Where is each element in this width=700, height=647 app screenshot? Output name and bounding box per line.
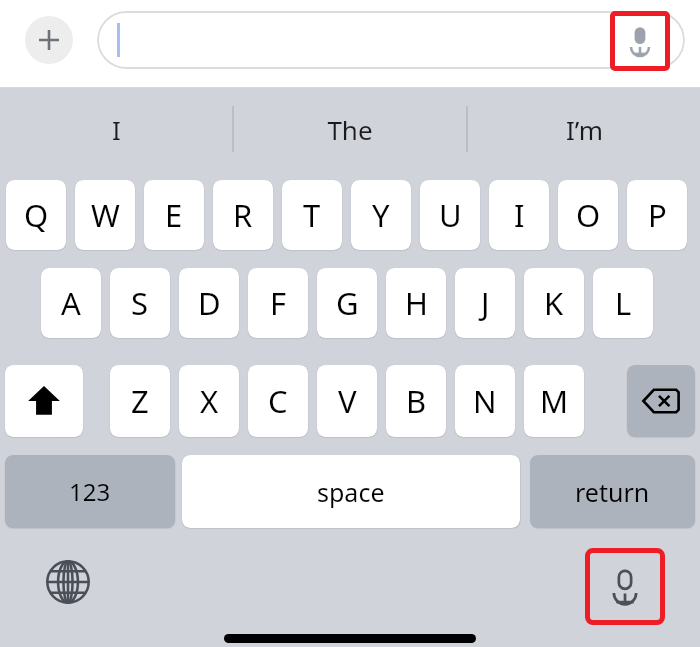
staticText: The [327, 112, 373, 147]
button[interactable]: M [524, 365, 584, 437]
staticText: A [61, 282, 81, 324]
staticText: N [473, 380, 497, 422]
staticText: F [270, 282, 287, 324]
button[interactable]: S [110, 268, 170, 338]
button[interactable]: return [530, 455, 695, 528]
staticText: W [91, 194, 120, 236]
staticText: L [615, 282, 632, 324]
staticText: J [481, 282, 490, 324]
button[interactable]: L [593, 268, 653, 338]
button[interactable]: Y [351, 180, 411, 250]
staticText: U [439, 194, 462, 236]
button[interactable]: Shift [5, 365, 83, 437]
button[interactable]: P [627, 180, 687, 250]
button[interactable]: The [234, 88, 466, 170]
staticText: I [514, 194, 525, 236]
staticText: T [303, 194, 321, 236]
staticText: return [575, 475, 650, 509]
button[interactable]: O [558, 180, 618, 250]
button[interactable]: X [179, 365, 239, 437]
button[interactable]: I [489, 180, 549, 250]
button[interactable]: G [317, 268, 377, 338]
staticText: E [165, 194, 183, 236]
staticText: Y [372, 194, 390, 236]
button[interactable]: Z [110, 365, 170, 437]
button[interactable]: J [455, 268, 515, 338]
button[interactable]: I’m [468, 88, 700, 170]
button[interactable]: Switch keyboard language [40, 554, 96, 610]
button[interactable] [97, 11, 685, 69]
button[interactable]: Add [25, 16, 73, 64]
staticText: G [336, 282, 359, 324]
staticText: O [576, 194, 601, 236]
staticText: R [233, 194, 253, 236]
button[interactable]: D [179, 268, 239, 338]
staticText: X [200, 380, 219, 422]
button[interactable]: N [455, 365, 515, 437]
staticText: S [131, 282, 149, 324]
staticText: B [406, 380, 427, 422]
button[interactable]: H [386, 268, 446, 338]
staticText: 123 [69, 475, 111, 508]
button[interactable]: K [524, 268, 584, 338]
button[interactable]: U [420, 180, 480, 250]
button[interactable]: C [248, 365, 308, 437]
staticText: P [648, 194, 667, 236]
button[interactable]: 123 [5, 455, 175, 528]
button[interactable]: Dictate [610, 11, 670, 71]
staticText: Q [24, 194, 49, 236]
button[interactable]: R [213, 180, 273, 250]
button[interactable]: E [144, 180, 204, 250]
staticText: space [317, 475, 385, 509]
button[interactable]: A [41, 268, 101, 338]
button[interactable]: W [75, 180, 135, 250]
button[interactable]: F [248, 268, 308, 338]
staticText: D [198, 282, 221, 324]
staticText: I [112, 112, 121, 147]
staticText: K [544, 282, 564, 324]
staticText: V [338, 380, 357, 422]
staticText: C [268, 380, 288, 422]
button[interactable]: Backspace [627, 365, 695, 437]
button[interactable]: B [386, 365, 446, 437]
button[interactable]: V [317, 365, 377, 437]
button[interactable]: Q [6, 180, 66, 250]
staticText: H [405, 282, 428, 324]
button[interactable]: space [182, 455, 520, 528]
button[interactable]: Dictation [585, 548, 665, 625]
button[interactable]: I [0, 88, 232, 170]
staticText: I’m [566, 112, 603, 147]
staticText: Z [131, 380, 149, 422]
button[interactable]: T [282, 180, 342, 250]
staticText: M [540, 380, 569, 422]
